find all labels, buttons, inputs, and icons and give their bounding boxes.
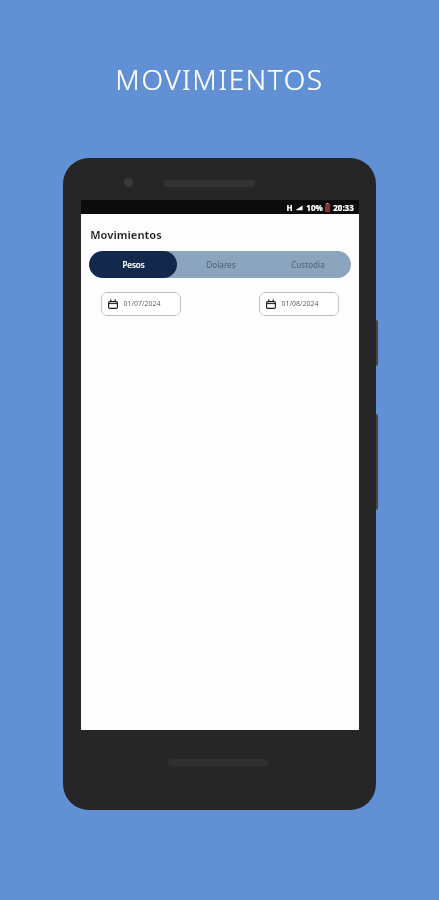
staticText: 20:33 [333,202,354,213]
button[interactable]: Select date [101,292,181,316]
button[interactable]: Select date [259,292,339,316]
staticText: Custodia [291,259,325,270]
staticText: 01/07/2024 [123,299,161,309]
button[interactable]: Custodia [264,251,351,278]
staticText: Pesos [122,259,145,270]
staticText: 01/08/2024 [281,299,319,309]
other: Select date [108,299,118,309]
button[interactable]: Dolares [177,251,264,278]
other: Select date [266,299,276,309]
staticText: Movimientos [90,227,162,242]
staticText: H [286,202,293,213]
staticText: 10% [306,202,323,213]
button[interactable]: Pesos [89,251,177,278]
staticText: MOVIMIENTOS [115,60,324,98]
staticText: Dolares [206,259,236,270]
